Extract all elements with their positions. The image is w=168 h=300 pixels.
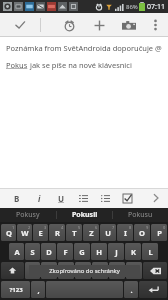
staticText: C xyxy=(64,266,69,276)
button[interactable]: Numbered list xyxy=(72,188,94,208)
staticText: . xyxy=(130,285,133,295)
button[interactable]: More options xyxy=(144,13,166,37)
staticText: Pokusil xyxy=(72,210,98,220)
staticText: F xyxy=(63,247,68,257)
staticText: 07:11 xyxy=(147,2,165,12)
staticText: D xyxy=(46,247,52,257)
button[interactable]: Bulleted list xyxy=(94,188,116,208)
staticText: 3 xyxy=(44,225,47,230)
staticText: K xyxy=(131,247,136,257)
staticText: 9 xyxy=(146,225,149,230)
button[interactable]: D xyxy=(41,243,56,260)
staticText: P xyxy=(157,228,162,238)
button[interactable]: L xyxy=(142,243,158,260)
staticText: I xyxy=(124,228,127,238)
staticText: X xyxy=(46,266,52,276)
staticText: V xyxy=(81,266,86,276)
button[interactable]: Underline xyxy=(50,188,72,208)
button[interactable]: I xyxy=(117,224,133,241)
button[interactable]: F xyxy=(57,243,73,260)
staticText: J xyxy=(115,247,118,257)
button[interactable]: Space xyxy=(46,281,123,298)
button[interactable]: B xyxy=(92,262,108,279)
staticText: jak se píše na nové klávesnici xyxy=(28,60,132,70)
staticText: Pokus xyxy=(6,60,28,70)
button[interactable]: Z xyxy=(83,224,99,241)
staticText: T xyxy=(72,228,77,238)
staticText: L xyxy=(148,247,153,257)
button[interactable]: A xyxy=(9,243,24,260)
staticText: G xyxy=(79,247,85,257)
button[interactable]: Done xyxy=(0,13,40,37)
staticText: B xyxy=(14,193,20,204)
button[interactable]: Pokusil xyxy=(57,208,112,222)
button[interactable]: O xyxy=(134,224,150,241)
staticText: R xyxy=(55,228,60,238)
button[interactable]: U xyxy=(100,224,116,241)
button[interactable]: J xyxy=(108,243,124,260)
button[interactable]: N xyxy=(109,262,125,279)
staticText: i xyxy=(38,193,41,204)
staticText: Poznámka from SvětAndroida doporučuje @ xyxy=(6,43,162,53)
staticText: E xyxy=(38,228,43,238)
staticText: Pokusy xyxy=(16,210,40,220)
staticText: Zkopírováno do schránky xyxy=(49,267,120,275)
staticText: 7 xyxy=(112,225,115,230)
staticText: U xyxy=(58,193,65,204)
staticText: 5 xyxy=(78,225,81,230)
button[interactable]: Reminder xyxy=(54,13,84,37)
staticText: 6 xyxy=(95,225,98,230)
button[interactable]: Pokusu xyxy=(113,208,168,222)
staticText: N xyxy=(114,266,121,276)
button[interactable]: H xyxy=(91,243,107,260)
staticText: Z xyxy=(89,228,94,238)
button[interactable]: Italic xyxy=(28,188,50,208)
staticText: , xyxy=(37,285,40,295)
button[interactable]: Bold xyxy=(6,188,28,208)
staticText: H xyxy=(96,247,102,257)
staticText: U xyxy=(105,228,111,238)
button[interactable]: . xyxy=(124,281,138,298)
staticText: 86% xyxy=(126,3,138,11)
button[interactable]: Shift xyxy=(1,262,24,279)
button[interactable]: M xyxy=(126,262,142,279)
button[interactable]: X xyxy=(41,262,57,279)
button[interactable]: Checklist xyxy=(116,188,138,208)
button[interactable]: ?123 xyxy=(1,281,30,298)
button[interactable]: V xyxy=(75,262,91,279)
staticText: W xyxy=(21,228,29,238)
staticText: A xyxy=(14,247,20,257)
button[interactable]: , xyxy=(31,281,45,298)
button[interactable]: P xyxy=(151,224,167,241)
staticText: 1 xyxy=(12,225,15,230)
button[interactable]: R xyxy=(49,224,65,241)
staticText: S xyxy=(30,247,35,257)
button[interactable]: Q xyxy=(1,224,16,241)
staticText: 4 xyxy=(61,225,64,230)
button[interactable]: C xyxy=(58,262,74,279)
button[interactable]: Backspace xyxy=(143,262,167,279)
button[interactable]: E xyxy=(33,224,48,241)
button[interactable]: Pokusy xyxy=(0,208,56,222)
button[interactable]: Enter xyxy=(139,281,167,298)
button[interactable]: T xyxy=(66,224,82,241)
staticText: Pokusu xyxy=(128,210,153,220)
button[interactable]: G xyxy=(74,243,90,260)
staticText: 8 xyxy=(129,225,132,230)
staticText: 2 xyxy=(28,225,31,230)
button[interactable]: More formatting xyxy=(148,188,164,208)
staticText: ?123 xyxy=(9,286,23,294)
button[interactable]: Add xyxy=(84,13,114,37)
staticText: 0 xyxy=(163,225,166,230)
staticText: B xyxy=(98,266,103,276)
button[interactable]: W xyxy=(17,224,32,241)
button[interactable]: K xyxy=(125,243,141,260)
staticText: Q xyxy=(6,228,12,238)
button[interactable]: Y xyxy=(25,262,40,279)
button[interactable]: Camera xyxy=(114,13,144,37)
button[interactable]: S xyxy=(25,243,40,260)
staticText: O xyxy=(139,228,145,238)
